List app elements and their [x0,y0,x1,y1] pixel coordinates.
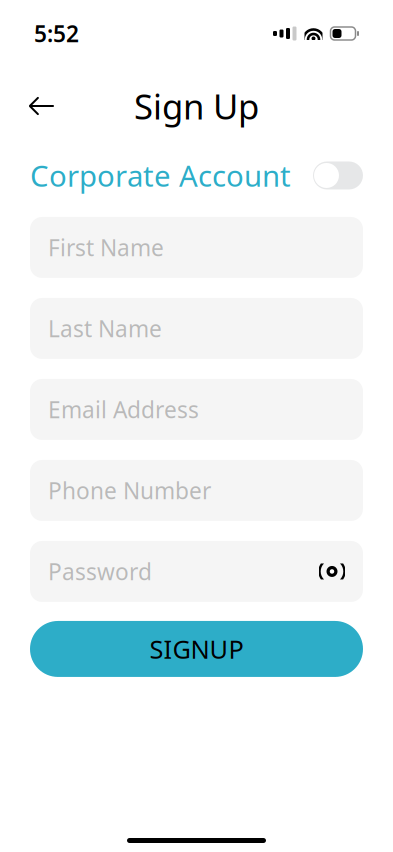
staticText: Corporate Account [30,156,291,195]
button[interactable]: SIGNUP [30,621,363,677]
button[interactable]: Phone Number [30,460,363,521]
button[interactable]: Last Name [30,298,363,359]
button[interactable]: First Name [30,217,363,278]
staticText: 5:52 [34,18,79,48]
staticText: First Name [48,232,164,262]
staticText: Phone Number [48,475,211,505]
button[interactable]: Email Address [30,379,363,440]
button[interactable]: Password [30,541,363,602]
button[interactable]: Back [20,84,64,128]
button[interactable]: Corporate Account toggle [313,161,363,189]
staticText: Password [48,556,152,586]
staticText: Sign Up [134,83,259,129]
staticText: Last Name [48,313,162,343]
staticText: SIGNUP [149,632,243,666]
staticText: Email Address [48,394,199,424]
